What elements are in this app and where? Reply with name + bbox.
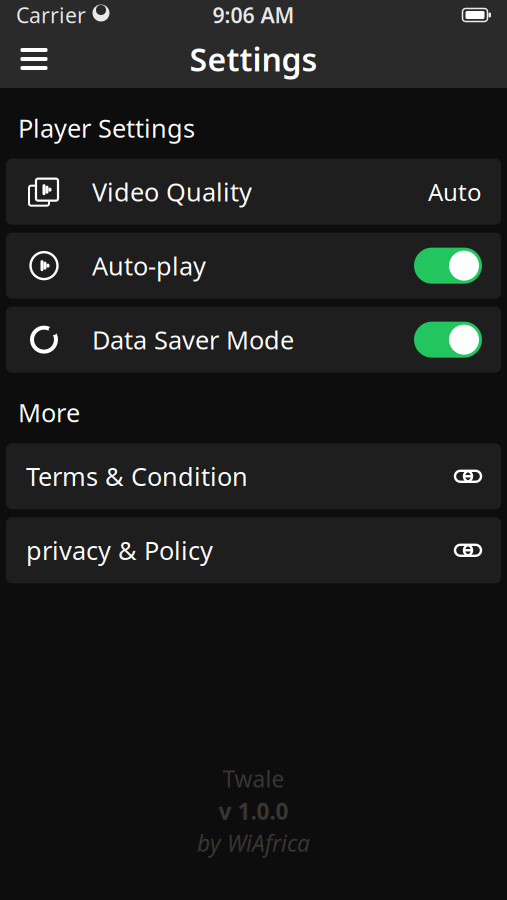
staticText: by WiAfrica (197, 828, 310, 858)
staticText: Settings (189, 38, 317, 80)
button[interactable]: Video Quality, Auto (0, 159, 507, 225)
button[interactable]: Menu (10, 35, 58, 83)
button[interactable]: Data Saver Mode (0, 307, 507, 373)
staticText: More (18, 396, 80, 429)
staticText: Auto (428, 176, 482, 208)
staticText: Twale (222, 764, 284, 794)
staticText: Auto-play (92, 249, 206, 282)
staticText: Terms & Condition (26, 459, 248, 493)
staticText: Player Settings (18, 111, 195, 145)
staticText: Data Saver Mode (92, 323, 294, 356)
staticText: Carrier (16, 1, 86, 29)
button[interactable]: Terms & Condition (0, 443, 507, 509)
button[interactable]: Auto-play (0, 233, 507, 299)
staticText: v 1.0.0 (218, 796, 288, 826)
button[interactable]: privacy & Policy (0, 517, 507, 583)
staticText: 9:06 AM (212, 1, 294, 29)
staticText: Video Quality (92, 175, 252, 208)
staticText: privacy & Policy (26, 533, 213, 567)
